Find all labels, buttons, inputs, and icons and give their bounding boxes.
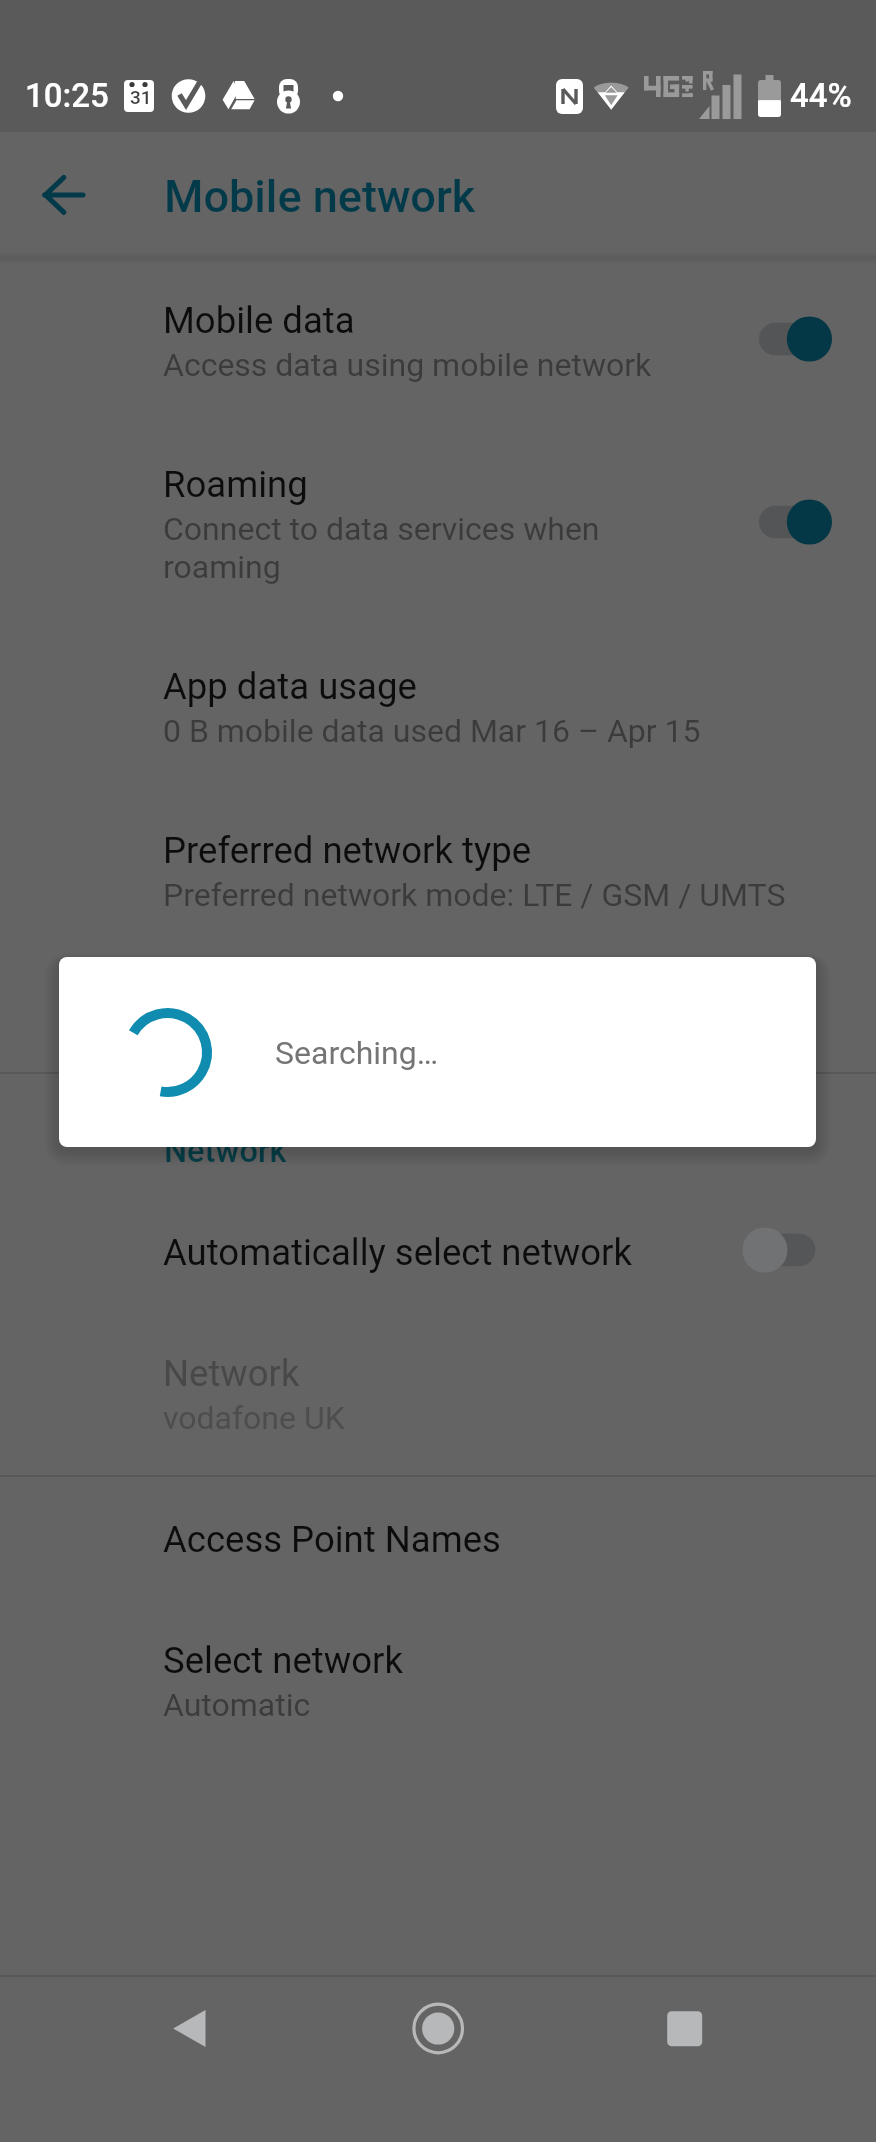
button[interactable] bbox=[0, 803, 876, 936]
staticText: Mobile data bbox=[163, 299, 355, 342]
button[interactable]: On bbox=[0, 490, 876, 554]
button[interactable] bbox=[0, 273, 876, 406]
staticText: Automatically select network bbox=[163, 1231, 632, 1274]
staticText: Network bbox=[163, 1352, 300, 1395]
button[interactable] bbox=[0, 1326, 876, 1459]
staticText: Access data using mobile network bbox=[163, 346, 652, 384]
button[interactable] bbox=[0, 437, 876, 607]
button[interactable]: Navigate up bbox=[16, 147, 112, 243]
staticText: Select network bbox=[163, 1639, 403, 1682]
staticText: Roaming bbox=[163, 463, 308, 506]
staticText: Preferred network type bbox=[163, 829, 532, 872]
button[interactable] bbox=[0, 1492, 876, 1578]
button[interactable] bbox=[0, 1613, 876, 1746]
button[interactable] bbox=[0, 1205, 876, 1291]
staticText: 10:25 bbox=[25, 76, 109, 115]
button[interactable]: Recent apps bbox=[637, 1996, 733, 2060]
staticText: 0 B mobile data used Mar 16 – Apr 15 bbox=[163, 712, 701, 750]
staticText: Connect to data services when roaming bbox=[163, 510, 600, 586]
staticText: Mobile network bbox=[164, 170, 476, 223]
staticText: Access Point Names bbox=[163, 1518, 501, 1561]
staticText: 31 bbox=[130, 86, 152, 108]
button[interactable]: Off bbox=[0, 1218, 876, 1282]
staticText: Searching… bbox=[275, 1034, 439, 1072]
staticText: vodafone UK bbox=[163, 1399, 345, 1437]
button[interactable]: Back bbox=[141, 1996, 237, 2060]
staticText: App data usage bbox=[163, 665, 417, 708]
button[interactable] bbox=[0, 639, 876, 772]
button[interactable]: On bbox=[0, 307, 876, 371]
staticText: Preferred network mode: LTE / GSM / UMTS bbox=[163, 876, 786, 914]
staticText: 44% bbox=[790, 76, 852, 115]
staticText: Network bbox=[164, 1132, 287, 1170]
staticText: Automatic bbox=[163, 1686, 311, 1724]
button[interactable]: Home bbox=[390, 1996, 486, 2060]
